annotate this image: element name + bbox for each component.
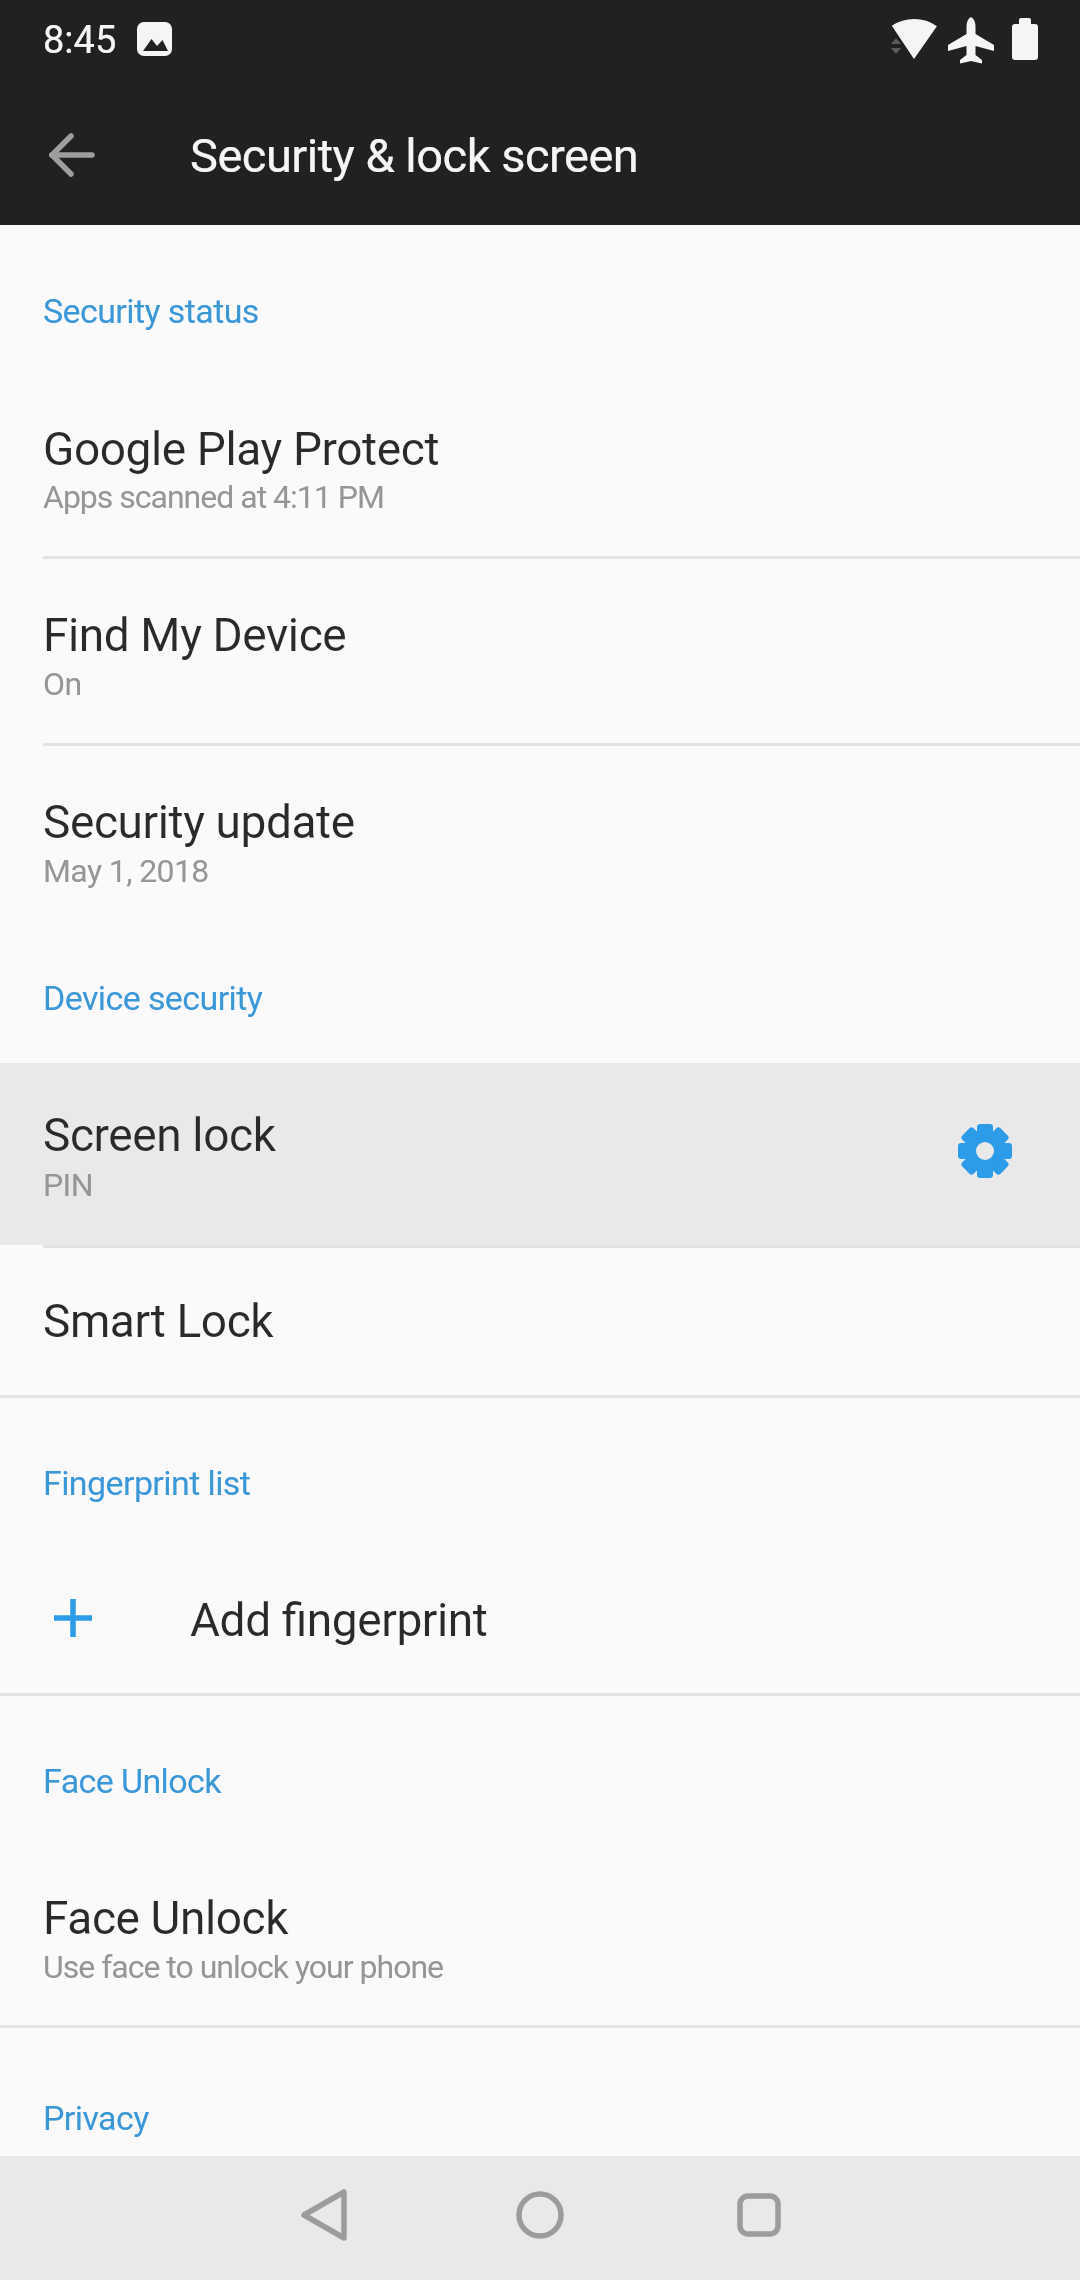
staticText: Device security: [43, 978, 263, 1018]
button[interactable]: Add fingerprint: [0, 1540, 1080, 1692]
staticText: May 1, 2018: [43, 852, 209, 890]
staticText: Find My Device: [43, 608, 347, 662]
staticText: Security update: [43, 795, 355, 849]
staticText: 8:45: [43, 18, 117, 63]
staticText: Privacy: [43, 2098, 149, 2138]
button[interactable]: [275, 2167, 371, 2263]
staticText: Smart Lock: [43, 1294, 274, 1348]
staticText: Apps scanned at 4:11 PM: [43, 478, 384, 516]
button[interactable]: Face Unlock: [0, 1850, 1080, 2025]
staticText: Fingerprint list: [43, 1463, 251, 1503]
button[interactable]: Security update: [0, 746, 1080, 906]
staticText: Google Play Protect: [43, 422, 440, 476]
staticText: Face Unlock: [43, 1891, 289, 1945]
button[interactable]: Find My Device: [0, 559, 1080, 745]
button[interactable]: Screen lock: [0, 1063, 1080, 1245]
staticText: Security & lock screen: [190, 128, 639, 183]
staticText: Face Unlock: [43, 1761, 221, 1801]
staticText: Screen lock: [43, 1108, 276, 1162]
button[interactable]: Google Play Protect: [0, 390, 1080, 558]
staticText: On: [43, 665, 82, 703]
button[interactable]: [711, 2167, 807, 2263]
staticText: Add fingerprint: [190, 1593, 488, 1647]
button[interactable]: [492, 2167, 588, 2263]
button[interactable]: [36, 119, 108, 191]
button[interactable]: Smart Lock: [0, 1248, 1080, 1395]
staticText: Use face to unlock your phone: [43, 1948, 444, 1986]
staticText: Security status: [43, 291, 259, 331]
staticText: PIN: [43, 1166, 93, 1204]
